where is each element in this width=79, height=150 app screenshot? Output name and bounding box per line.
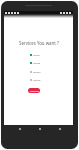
button[interactable]: Catering	[30, 61, 41, 64]
button[interactable]: CONTINUE	[28, 88, 40, 93]
button[interactable]: Cleaning	[30, 78, 41, 81]
staticText: Cleaning	[33, 79, 41, 81]
button[interactable]: Massage	[30, 70, 41, 73]
staticText: CONTINUE	[30, 90, 39, 92]
staticText: Massage	[33, 71, 41, 73]
staticText: Nursing	[33, 54, 40, 56]
staticText: Catering	[33, 62, 41, 64]
button[interactable]: Nursing	[30, 53, 40, 56]
staticText: Services You want ?	[19, 40, 59, 46]
